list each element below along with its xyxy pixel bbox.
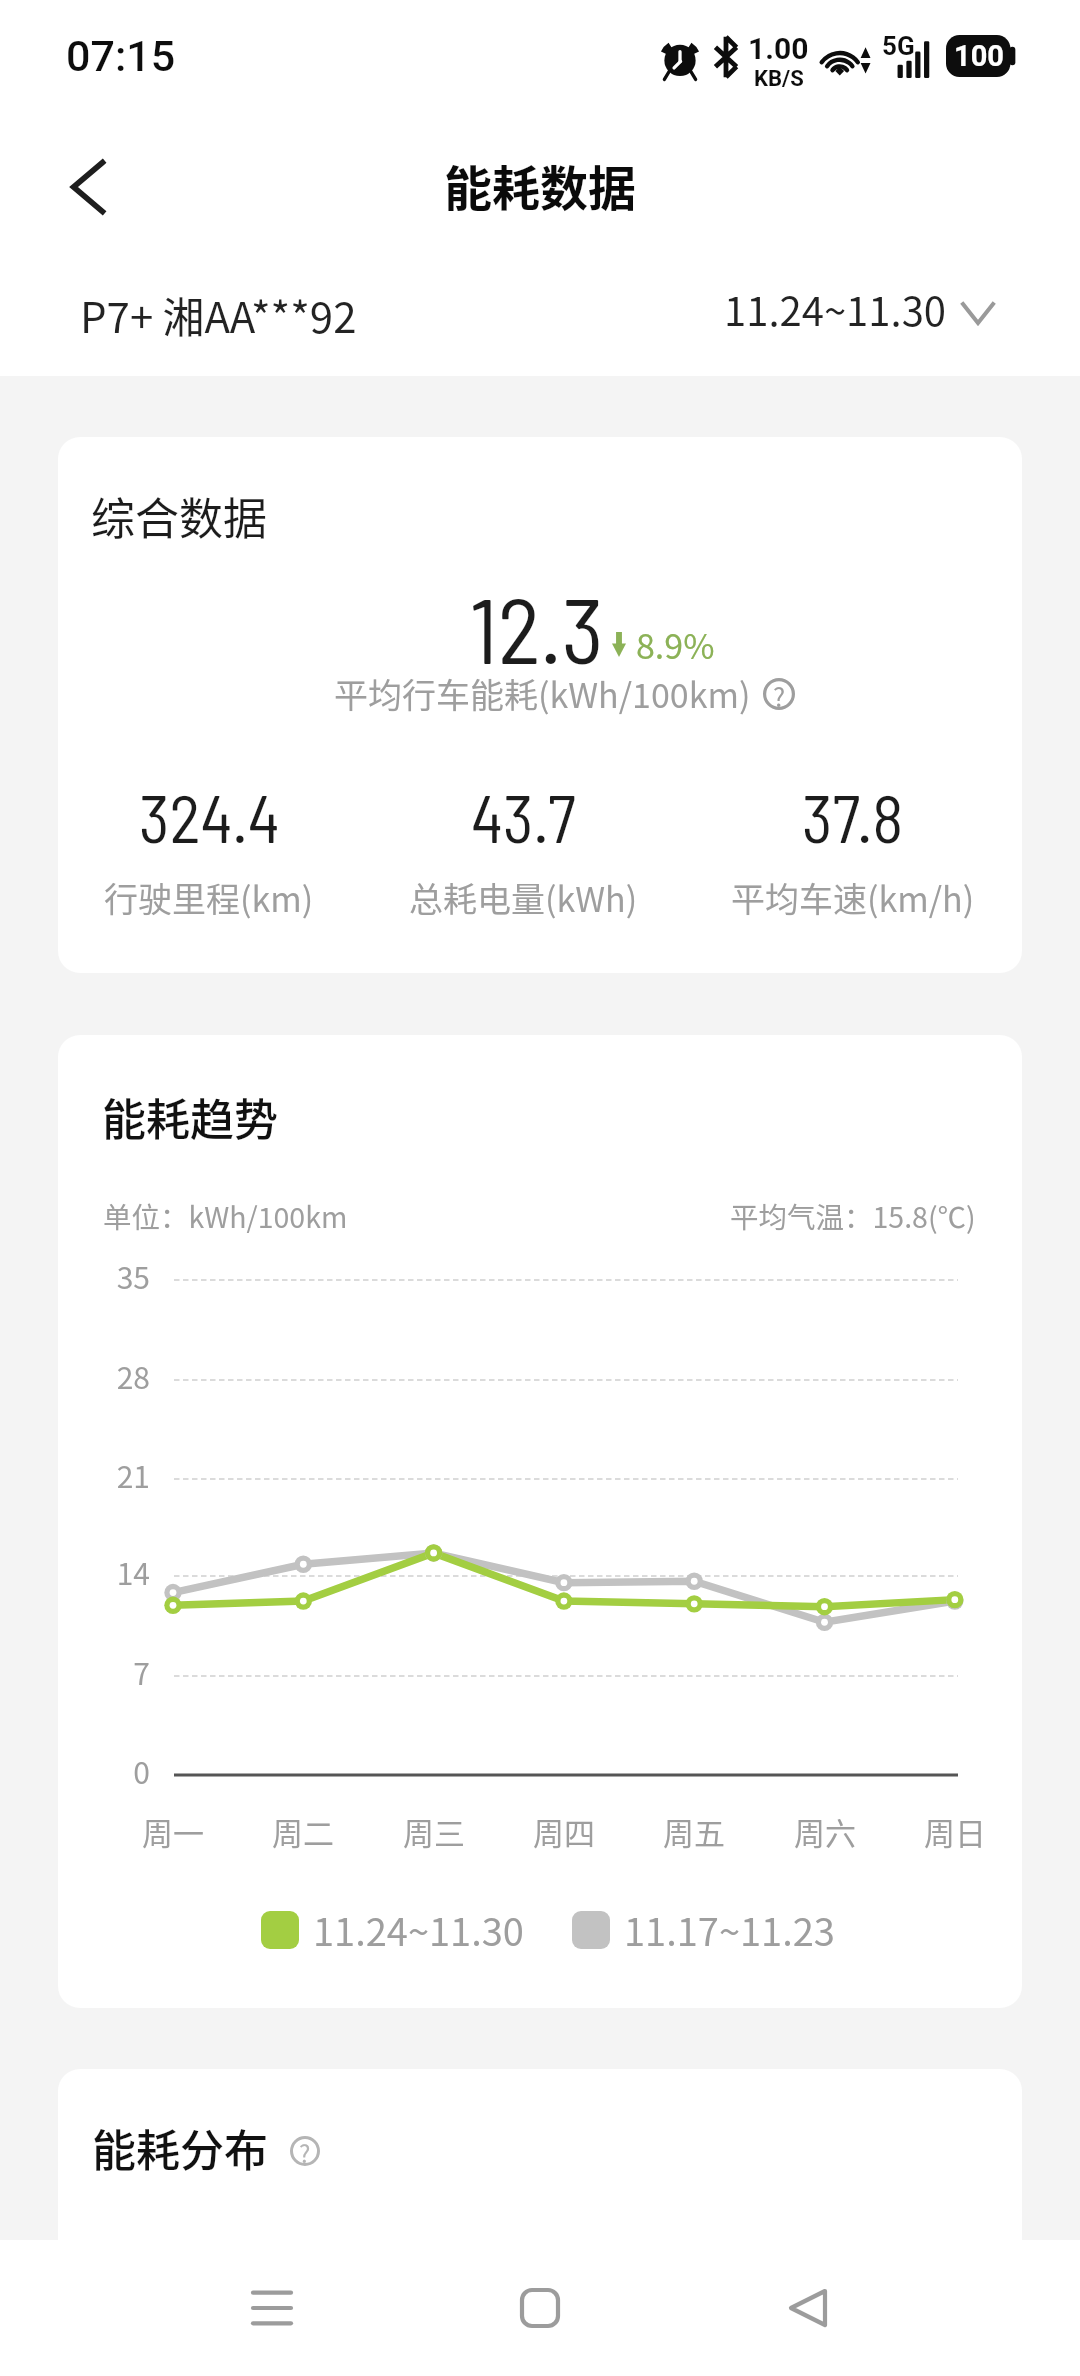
- button[interactable]: Recent apps: [202, 2260, 342, 2356]
- staticText: ?: [773, 677, 786, 709]
- staticText: 43.7: [471, 777, 576, 856]
- staticText: 07:15: [66, 31, 176, 81]
- staticText: 周一: [113, 1809, 233, 1854]
- button[interactable]: Back: [22, 121, 154, 253]
- staticText: 能耗趋势: [102, 1085, 278, 1149]
- staticText: 能耗分布: [92, 2116, 268, 2180]
- staticText: 周二: [243, 1809, 363, 1854]
- staticText: 12.3: [470, 573, 604, 682]
- staticText: P7+ 湘AA***92: [80, 284, 357, 345]
- staticText: 平均行车能耗(kWh/100km): [334, 669, 751, 718]
- staticText: 能耗数据: [444, 150, 637, 220]
- staticText: 周五: [634, 1809, 754, 1854]
- staticText: 平均气温：15.8(℃): [730, 1195, 976, 1236]
- staticText: 1.00: [748, 31, 809, 66]
- staticText: 平均车速(km/h): [731, 873, 975, 922]
- staticText: 11.17~11.23: [624, 1902, 835, 1957]
- staticText: 14: [70, 1550, 150, 1593]
- staticText: KB/S: [754, 66, 804, 92]
- staticText: 8.9%: [636, 620, 715, 669]
- button[interactable]: Back: [738, 2260, 878, 2356]
- button[interactable]: 11.24~11.30: [724, 280, 995, 338]
- staticText: 周日: [895, 1809, 1015, 1854]
- staticText: 7: [70, 1650, 150, 1693]
- staticText: 11.24~11.30: [313, 1902, 524, 1957]
- staticText: 周三: [374, 1809, 494, 1854]
- staticText: 37.8: [802, 777, 904, 856]
- staticText: 单位：kWh/100km: [103, 1195, 348, 1236]
- staticText: 周四: [504, 1809, 624, 1854]
- staticText: 0: [70, 1749, 150, 1792]
- staticText: 35: [70, 1254, 150, 1297]
- staticText: 综合数据: [91, 484, 267, 548]
- staticText: 总耗电量(kWh): [409, 873, 638, 922]
- staticText: 11.24~11.30: [724, 280, 947, 338]
- staticText: 100: [954, 39, 1004, 73]
- staticText: 周六: [765, 1809, 885, 1854]
- staticText: 5G: [882, 31, 915, 61]
- staticText: 21: [70, 1453, 150, 1496]
- staticText: 行驶里程(km): [104, 873, 314, 922]
- staticText: ?: [299, 2135, 311, 2165]
- staticText: 28: [70, 1354, 150, 1397]
- button[interactable]: Home: [470, 2260, 610, 2356]
- staticText: 324.4: [139, 777, 280, 856]
